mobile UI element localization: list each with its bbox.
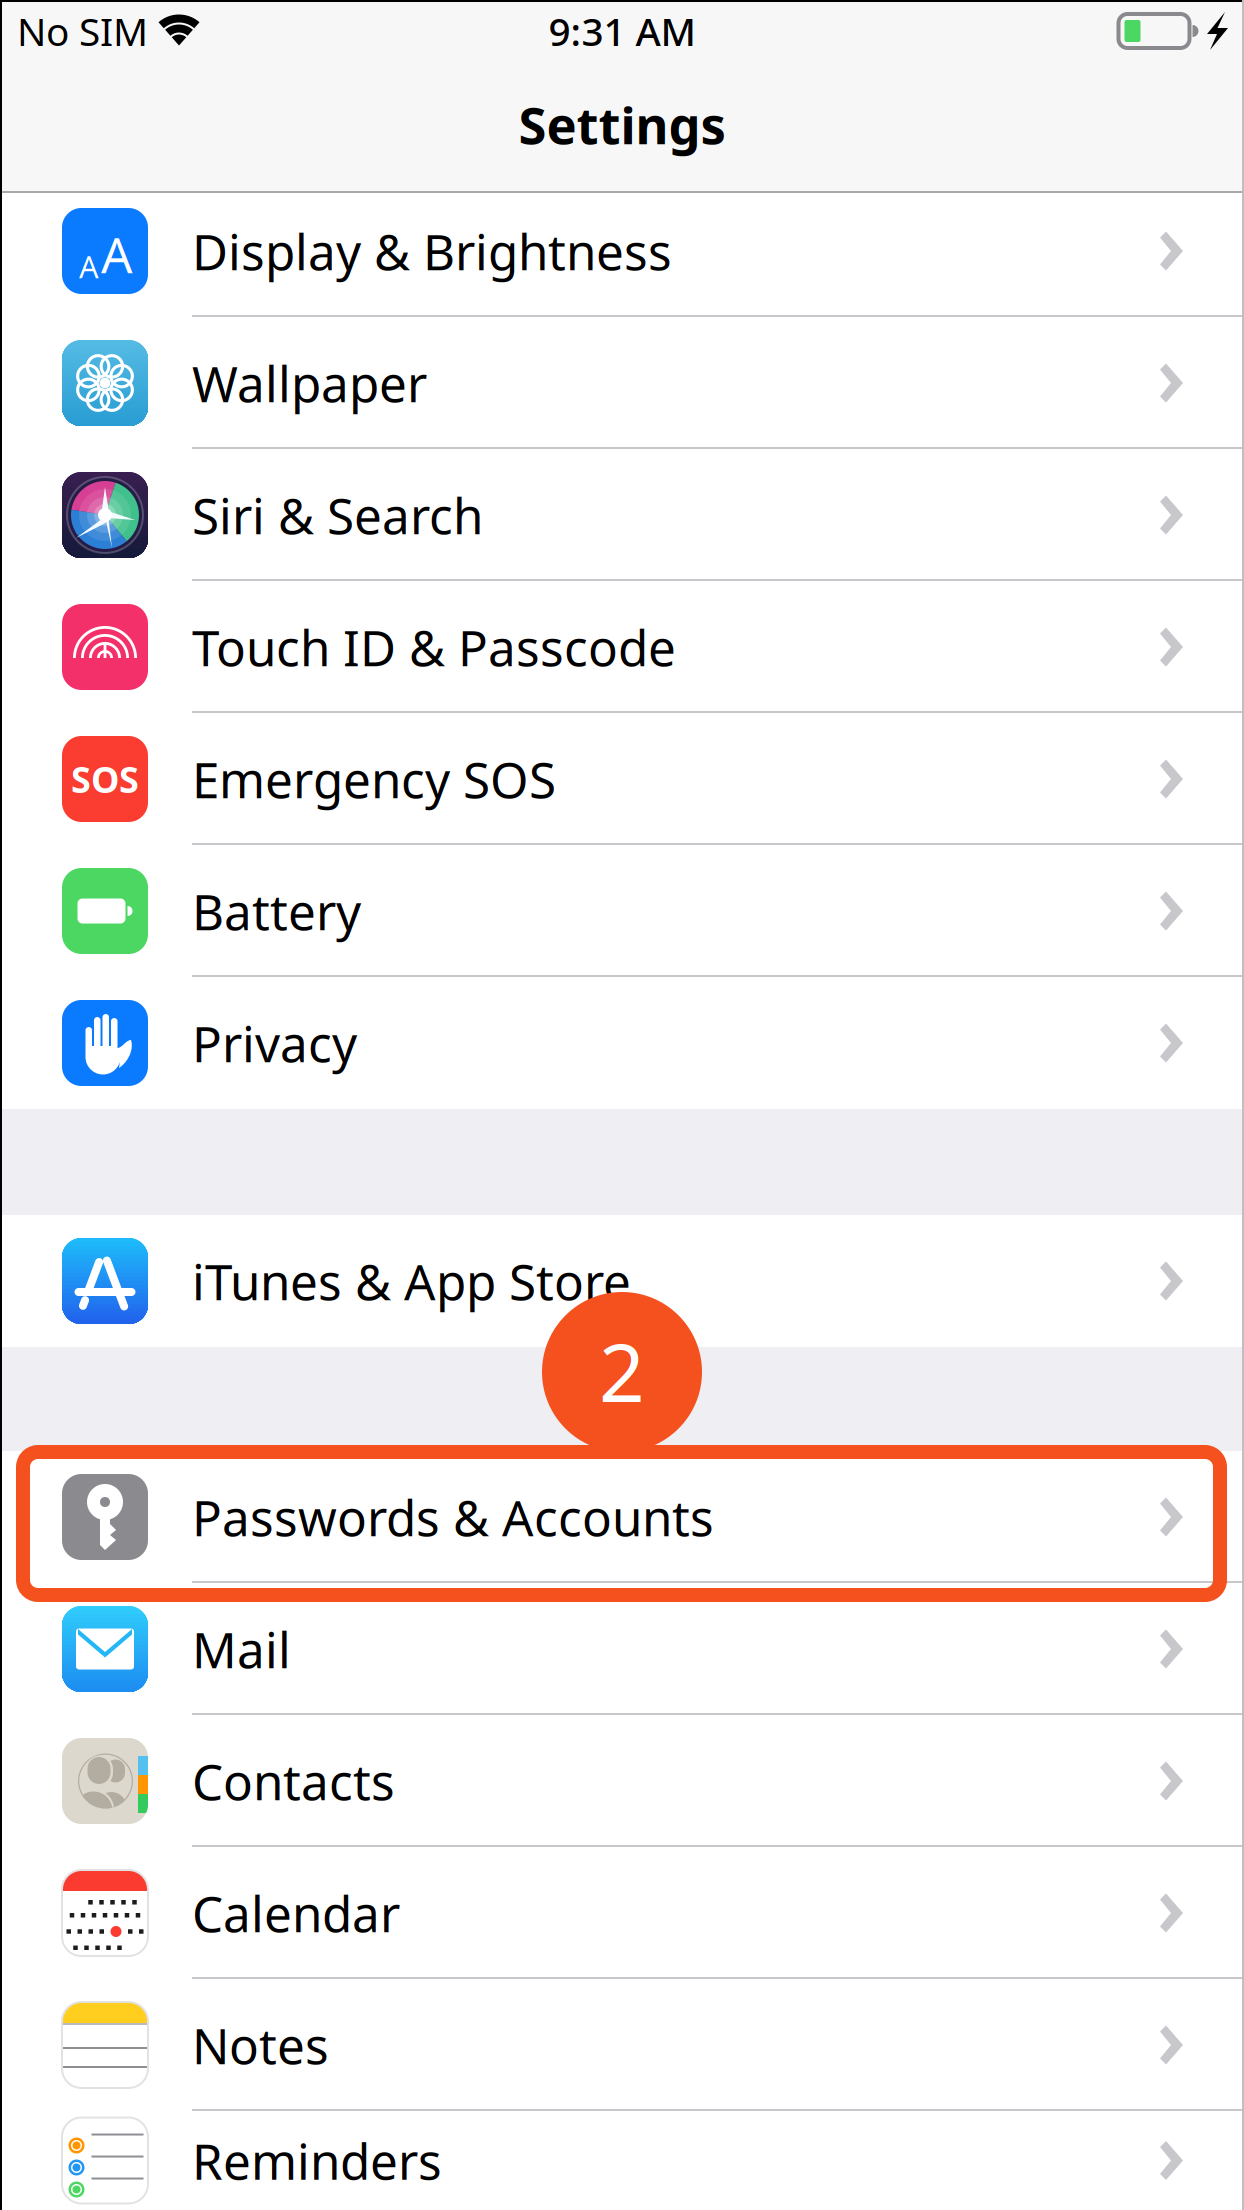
staticText: Settings bbox=[518, 91, 725, 158]
button[interactable]: Privacy bbox=[0, 977, 1244, 1109]
staticText: Notes bbox=[192, 2012, 329, 2078]
button[interactable]: A bbox=[0, 193, 1244, 317]
button[interactable]: Battery bbox=[0, 845, 1244, 977]
staticText: Passwords & Accounts bbox=[192, 1484, 714, 1550]
button[interactable]: SOS bbox=[0, 713, 1244, 845]
staticText: Wallpaper bbox=[192, 350, 427, 416]
staticText: Reminders bbox=[192, 2128, 442, 2193]
staticText: Contacts bbox=[192, 1748, 395, 1814]
button[interactable]: Mail bbox=[0, 1583, 1244, 1715]
button[interactable]: Reminders bbox=[0, 2111, 1244, 2210]
button[interactable]: Wallpaper bbox=[0, 317, 1244, 449]
button[interactable]: Calendar bbox=[0, 1847, 1244, 1979]
staticText: Mail bbox=[192, 1616, 291, 1682]
button[interactable]: Contacts bbox=[0, 1715, 1244, 1847]
button[interactable]: Siri & Search bbox=[0, 449, 1244, 581]
staticText: 2 bbox=[599, 1318, 645, 1424]
button[interactable]: iTunes & App Store bbox=[0, 1215, 1244, 1347]
button[interactable]: Notes bbox=[0, 1979, 1244, 2111]
staticText: 9:31 AM bbox=[548, 5, 695, 57]
staticText: No SIM bbox=[17, 5, 148, 57]
staticText: Calendar bbox=[192, 1880, 400, 1946]
staticText: Battery bbox=[192, 878, 361, 944]
staticText: Display & Brightness bbox=[192, 218, 672, 284]
staticText: iTunes & App Store bbox=[192, 1248, 631, 1314]
staticText: SOS bbox=[71, 755, 139, 803]
staticText: A bbox=[101, 221, 133, 287]
button[interactable]: Touch ID & Passcode bbox=[0, 581, 1244, 713]
staticText: Siri & Search bbox=[192, 482, 483, 548]
staticText: Touch ID & Passcode bbox=[192, 614, 676, 680]
staticText: Privacy bbox=[192, 1010, 357, 1076]
button[interactable]: Passwords & Accounts bbox=[0, 1451, 1244, 1583]
staticText: Emergency SOS bbox=[192, 746, 556, 812]
staticText: A bbox=[79, 246, 99, 287]
